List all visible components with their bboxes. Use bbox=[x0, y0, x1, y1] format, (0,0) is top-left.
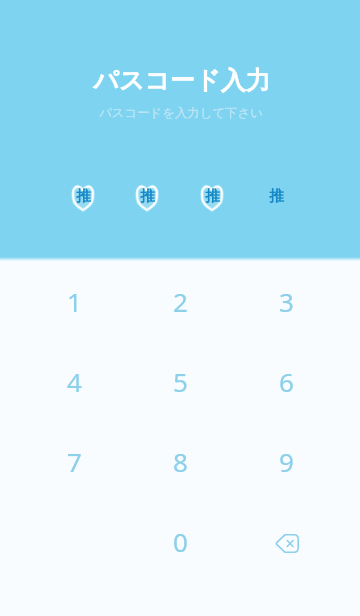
staticText: 5 bbox=[173, 364, 188, 399]
button[interactable]: Passcode digit 2 entered bbox=[131, 183, 163, 212]
staticText: 3 bbox=[279, 284, 294, 319]
button[interactable]: 9 bbox=[233, 422, 339, 502]
button[interactable]: 7 bbox=[21, 422, 127, 502]
button[interactable]: 1 bbox=[21, 262, 127, 342]
button[interactable]: 3 bbox=[233, 262, 339, 342]
button[interactable]: 2 bbox=[127, 262, 233, 342]
staticText: 4 bbox=[67, 364, 82, 399]
button[interactable]: 0 bbox=[127, 502, 233, 582]
button[interactable]: Backspace bbox=[233, 502, 339, 582]
staticText: 7 bbox=[67, 444, 82, 479]
button[interactable]: Passcode digit 4 empty bbox=[260, 183, 292, 212]
button[interactable]: 5 bbox=[127, 342, 233, 422]
button[interactable]: Passcode digit 3 entered bbox=[196, 183, 228, 212]
staticText: 推 bbox=[76, 187, 91, 206]
staticText: 1 bbox=[67, 284, 82, 319]
staticText: 推 bbox=[140, 187, 155, 206]
button[interactable]: 8 bbox=[127, 422, 233, 502]
button[interactable]: Passcode digit 1 entered bbox=[67, 183, 99, 212]
staticText: パスコードを入力して下さい bbox=[99, 105, 263, 121]
staticText: 6 bbox=[279, 364, 294, 399]
staticText: 推 bbox=[269, 187, 284, 206]
staticText: 2 bbox=[173, 284, 188, 319]
staticText: 9 bbox=[279, 444, 294, 479]
staticText: 8 bbox=[173, 444, 188, 479]
button[interactable]: 4 bbox=[21, 342, 127, 422]
staticText: パスコード入力 bbox=[93, 65, 271, 96]
staticText: 推 bbox=[205, 187, 220, 206]
button[interactable]: 6 bbox=[233, 342, 339, 422]
staticText: 0 bbox=[173, 524, 188, 559]
